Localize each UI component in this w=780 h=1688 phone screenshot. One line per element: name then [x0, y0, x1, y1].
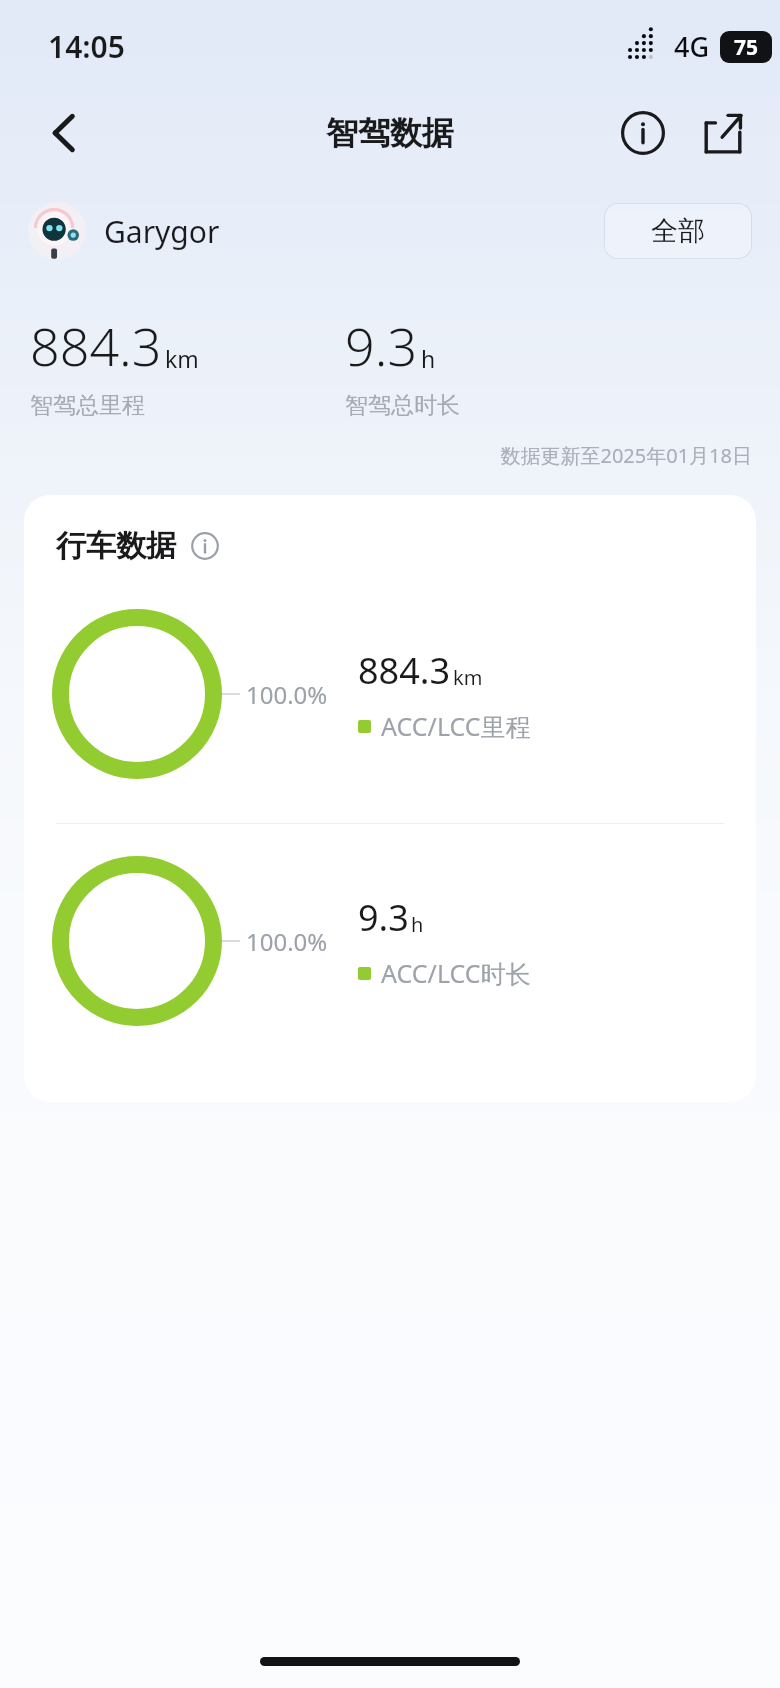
staticText: 75 [734, 33, 759, 62]
staticText: 9.3 [345, 310, 418, 381]
button[interactable]: About driving data [188, 529, 222, 563]
button[interactable]: Info [612, 102, 674, 164]
staticText: 智驾总时长 [345, 391, 460, 420]
staticText: 智驾总里程 [30, 391, 145, 420]
button[interactable]: Share [692, 102, 754, 164]
button[interactable]: 全部 [604, 203, 752, 259]
staticText: 4G [674, 28, 710, 65]
staticText: 数据更新至2025年01月18日 [0, 442, 752, 469]
button[interactable]: Back [30, 99, 98, 167]
staticText: 100.0% [246, 925, 328, 958]
staticText: ACC/LCC时长 [381, 956, 531, 990]
staticText: h [411, 911, 424, 938]
staticText: km [453, 664, 483, 691]
staticText: Garygor [104, 211, 220, 252]
staticText: 884.3 [358, 646, 451, 695]
staticText: 智驾数据 [326, 113, 454, 153]
staticText: 14:05 [48, 26, 125, 67]
staticText: 884.3 [30, 310, 162, 381]
staticText: ACC/LCC里程 [381, 709, 531, 743]
staticText: 行车数据 [56, 527, 176, 565]
staticText: 100.0% [246, 678, 328, 711]
staticText: km [165, 343, 199, 374]
staticText: 全部 [651, 214, 705, 248]
staticText: 9.3 [358, 893, 409, 942]
button[interactable]: Garygor [28, 202, 220, 260]
staticText: h [421, 343, 436, 374]
